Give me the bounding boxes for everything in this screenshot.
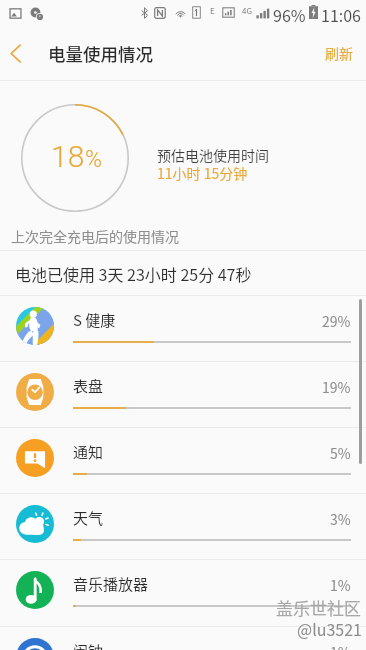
staticText: 表盘 bbox=[73, 375, 104, 397]
staticText: 上次完全充电后的使用情况 bbox=[11, 226, 179, 246]
staticText: 电量使用情况 bbox=[48, 41, 153, 66]
button[interactable]: 刷新 bbox=[312, 31, 366, 75]
staticText: 电池已使用 3天 23小时 25分 47秒 bbox=[15, 262, 252, 285]
staticText: 闹钟 bbox=[73, 640, 104, 650]
staticText: 通知 bbox=[73, 441, 104, 463]
staticText: 19% bbox=[322, 377, 351, 397]
staticText: 音乐播放器 bbox=[73, 573, 149, 595]
button[interactable]: Back bbox=[0, 30, 31, 77]
staticText: 4G bbox=[242, 5, 252, 17]
staticText: 96% bbox=[273, 3, 306, 26]
button[interactable]: 电池已使用 3天 23小时 25分 47秒 bbox=[0, 251, 366, 295]
staticText: @lu3521 bbox=[297, 617, 362, 640]
staticText: 1% bbox=[330, 575, 351, 595]
staticText: S 健康 bbox=[73, 309, 116, 331]
button[interactable]: 闹钟 bbox=[0, 627, 366, 650]
staticText: 11:06 bbox=[321, 3, 361, 26]
button[interactable]: 天气 bbox=[0, 494, 366, 559]
staticText: 天气 bbox=[73, 507, 104, 529]
staticText: 18 bbox=[51, 139, 85, 174]
staticText: 1% bbox=[330, 642, 351, 650]
button[interactable]: S 健康 bbox=[0, 296, 366, 361]
button[interactable]: 音乐播放器 bbox=[0, 560, 366, 625]
staticText: 盖乐世社区 bbox=[276, 595, 361, 620]
staticText: 29% bbox=[322, 311, 351, 331]
staticText: E bbox=[210, 5, 215, 17]
staticText: 刷新 bbox=[325, 43, 353, 63]
staticText: 11小时 15分钟 bbox=[157, 163, 248, 183]
staticText: 3% bbox=[330, 509, 351, 529]
button[interactable]: 通知 bbox=[0, 428, 366, 493]
staticText: 预估电池使用时间 bbox=[157, 145, 269, 165]
staticText: 5% bbox=[330, 443, 351, 463]
button[interactable]: 表盘 bbox=[0, 362, 366, 427]
staticText: % bbox=[85, 146, 103, 173]
